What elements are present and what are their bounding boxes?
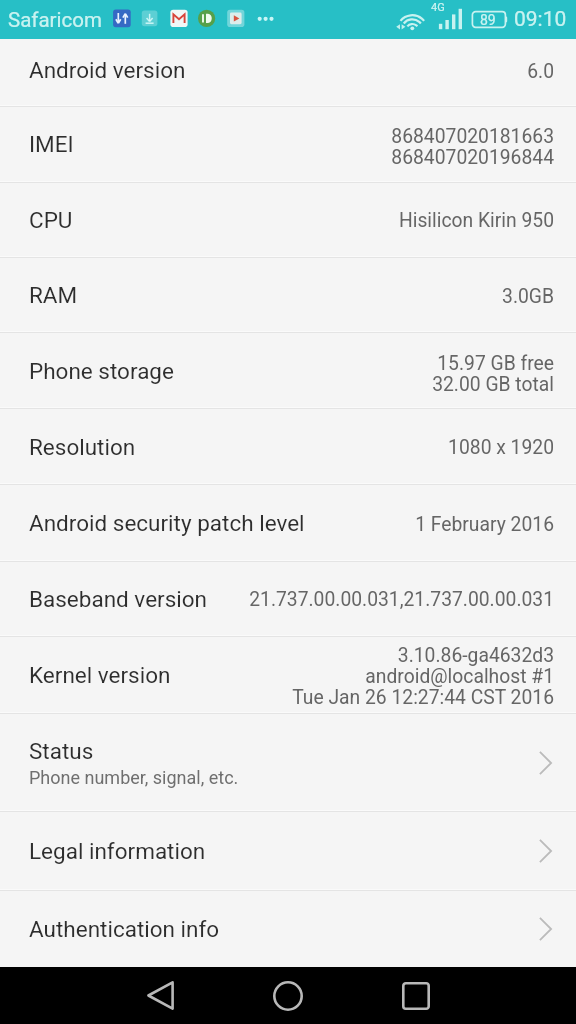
staticText: 1 February 2016 <box>415 515 554 536</box>
staticText: 09:10 <box>514 7 567 32</box>
staticText: Baseband version <box>29 586 208 612</box>
staticText: Android version <box>29 57 186 83</box>
staticText: RAM <box>29 282 78 308</box>
staticText: Authentication info <box>29 916 220 942</box>
staticText: IMEI <box>29 131 74 157</box>
staticText: Android security patch level <box>29 510 305 536</box>
button[interactable]: Back <box>110 967 210 1024</box>
button[interactable]: RAM <box>0 257 576 333</box>
staticText: 3.0GB <box>502 287 554 308</box>
button[interactable]: Kernel version <box>0 636 576 714</box>
staticText: Legal information <box>29 838 206 864</box>
staticText: Resolution <box>29 434 136 460</box>
staticText: Phone number, signal, etc. <box>29 767 239 788</box>
staticText: 1080 x 1920 <box>448 438 554 459</box>
button[interactable]: Legal information <box>0 812 576 890</box>
button[interactable]: Recent apps <box>366 967 466 1024</box>
staticText: Hisilicon Kirin 950 <box>398 211 554 232</box>
button[interactable]: Home <box>238 967 338 1024</box>
button[interactable]: Android version <box>0 39 576 106</box>
staticText: 6.0 <box>527 62 554 83</box>
staticText: 89 <box>480 12 496 28</box>
staticText: Kernel version <box>29 662 171 688</box>
staticText: Status <box>29 738 94 764</box>
staticText: 868407020181663 868407020196844 <box>391 127 554 169</box>
staticText: Safaricom <box>8 8 102 32</box>
staticText: Phone storage <box>29 358 174 384</box>
staticText: 15.97 GB free 32.00 GB total <box>432 354 554 396</box>
staticText: CPU <box>29 207 73 233</box>
button[interactable]: Resolution <box>0 408 576 485</box>
button[interactable]: Phone storage <box>0 333 576 409</box>
staticText: 3.10.86-ga4632d3 android@localhost #1 Tu… <box>292 646 554 709</box>
staticText: 4G <box>431 1 445 14</box>
button[interactable]: Authentication info <box>0 890 576 968</box>
staticText: 21.737.00.00.031,21.737.00.00.031 <box>249 590 554 611</box>
button[interactable]: IMEI <box>0 106 576 182</box>
button[interactable]: CPU <box>0 182 576 257</box>
button[interactable]: Status <box>0 713 576 812</box>
button[interactable]: Baseband version <box>0 561 576 636</box>
button[interactable]: Android security patch level <box>0 485 576 561</box>
